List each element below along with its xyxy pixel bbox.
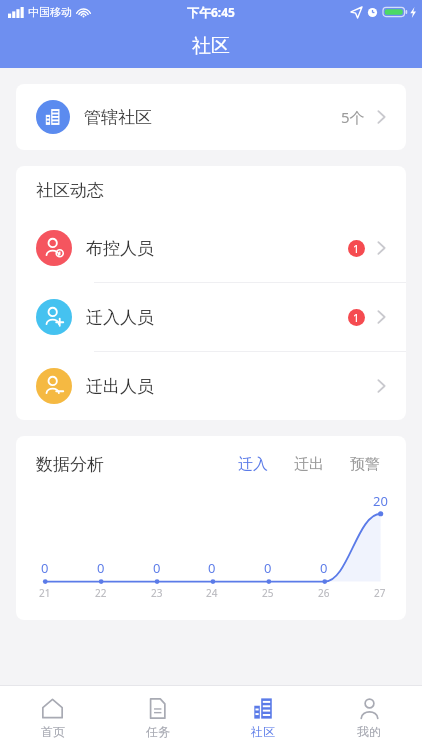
button[interactable]: 我的 bbox=[316, 686, 422, 750]
staticText: 25 bbox=[262, 586, 274, 600]
staticText: 任务 bbox=[146, 724, 170, 739]
staticText: 24 bbox=[206, 586, 218, 600]
staticText: 我的 bbox=[357, 724, 381, 739]
staticText: 社区动态 bbox=[36, 180, 104, 201]
staticText: 0 bbox=[320, 559, 328, 577]
staticText: 0 bbox=[153, 559, 161, 577]
button[interactable]: 预警 bbox=[342, 449, 388, 480]
button[interactable]: 布控人员 bbox=[16, 214, 406, 282]
staticText: 0 bbox=[41, 559, 49, 577]
staticText: 1 bbox=[353, 310, 360, 325]
staticText: 1 bbox=[353, 241, 360, 256]
staticText: 26 bbox=[318, 586, 330, 600]
staticText: 27 bbox=[374, 586, 386, 600]
staticText: 迁入人员 bbox=[86, 307, 154, 328]
button[interactable]: 任务 bbox=[105, 686, 210, 750]
staticText: 20 bbox=[373, 492, 388, 510]
staticText: 22 bbox=[95, 586, 107, 600]
button[interactable]: 首页 bbox=[0, 686, 105, 750]
staticText: 23 bbox=[151, 586, 163, 600]
staticText: 社区 bbox=[251, 724, 275, 739]
staticText: 管辖社区 bbox=[84, 107, 152, 128]
staticText: 数据分析 bbox=[36, 454, 104, 475]
staticText: 下午6:45 bbox=[187, 4, 235, 20]
button[interactable]: 管辖社区 bbox=[16, 84, 406, 150]
staticText: 布控人员 bbox=[86, 238, 154, 259]
staticText: 社区 bbox=[192, 34, 230, 58]
staticText: 0 bbox=[264, 559, 272, 577]
staticText: 0 bbox=[208, 559, 216, 577]
staticText: 5个 bbox=[341, 107, 365, 127]
button[interactable]: 迁出 bbox=[286, 449, 332, 480]
staticText: 迁出人员 bbox=[86, 376, 154, 397]
button[interactable]: 迁出人员 bbox=[16, 352, 406, 420]
button[interactable]: 社区 bbox=[210, 686, 316, 750]
staticText: 0 bbox=[97, 559, 105, 577]
button[interactable]: 迁入 bbox=[230, 449, 276, 480]
staticText: 首页 bbox=[41, 724, 65, 739]
button[interactable]: 迁入人员 bbox=[16, 283, 406, 351]
staticText: 迁入 bbox=[238, 455, 268, 474]
staticText: 中国移动 bbox=[28, 5, 72, 19]
staticText: 21 bbox=[39, 586, 51, 600]
staticText: 迁出 bbox=[294, 455, 324, 474]
staticText: 预警 bbox=[350, 455, 380, 474]
